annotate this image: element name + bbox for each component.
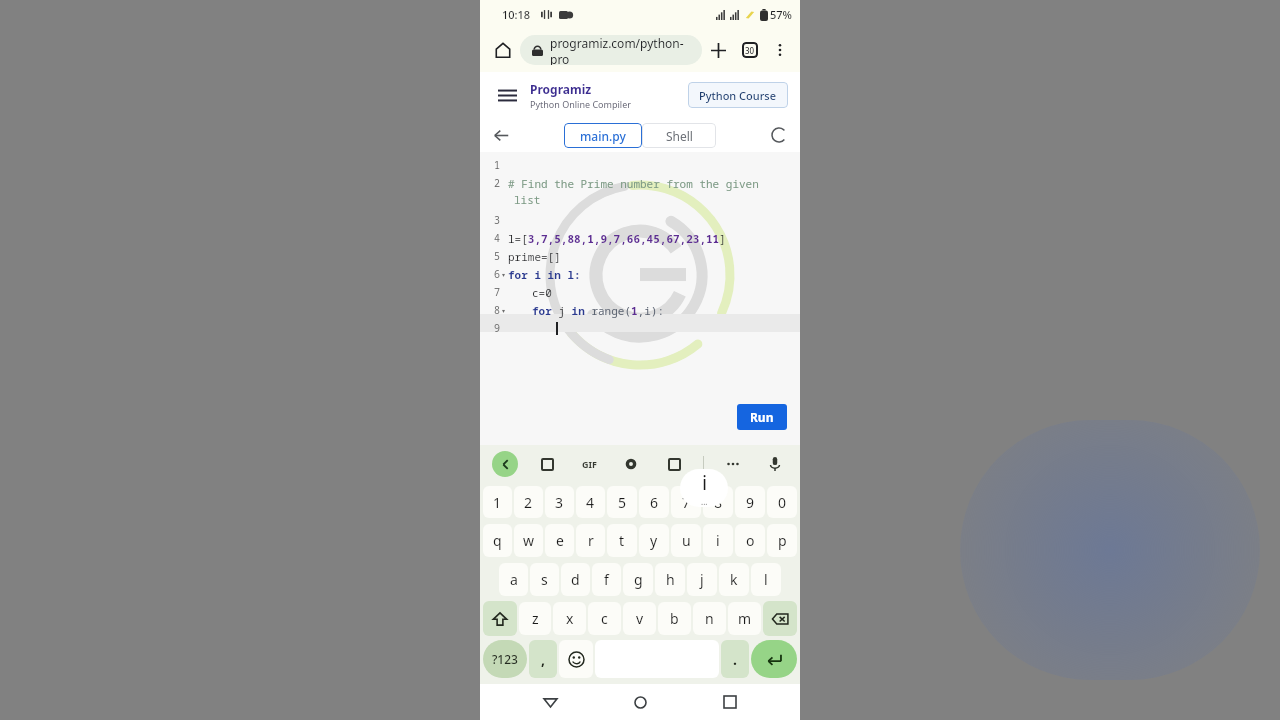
staticText: 6 bbox=[650, 493, 659, 512]
button[interactable]: Settings bbox=[618, 451, 644, 477]
staticText: prime=[] bbox=[508, 249, 561, 264]
staticText: Shell bbox=[666, 128, 693, 144]
button[interactable]: d bbox=[561, 563, 590, 596]
staticText: i bbox=[716, 531, 720, 550]
button[interactable]: Enter bbox=[751, 640, 797, 678]
staticText: c bbox=[601, 609, 608, 628]
button[interactable]: Menu bbox=[492, 80, 522, 110]
button[interactable]: m bbox=[728, 602, 761, 635]
staticText: 5 bbox=[618, 493, 627, 512]
button[interactable]: a bbox=[499, 563, 528, 596]
button[interactable]: Close toolbar bbox=[492, 451, 518, 477]
staticText: j bbox=[700, 570, 704, 589]
button[interactable]: c bbox=[588, 602, 621, 635]
staticText: 9 bbox=[494, 321, 500, 335]
staticText: Programiz bbox=[530, 81, 592, 97]
staticText: 0 bbox=[778, 493, 787, 512]
button[interactable]: More options bbox=[766, 36, 794, 64]
staticText: e bbox=[556, 531, 564, 550]
button[interactable]: e bbox=[545, 524, 574, 557]
button[interactable]: Recents bbox=[710, 684, 750, 720]
button[interactable]: Voice input bbox=[762, 451, 788, 477]
button[interactable]: 9 bbox=[735, 486, 765, 518]
button[interactable]: v bbox=[623, 602, 656, 635]
button[interactable]: f bbox=[592, 563, 621, 596]
button[interactable]: ?123 bbox=[483, 640, 527, 678]
button[interactable]: q bbox=[483, 524, 512, 557]
button[interactable]: , bbox=[529, 640, 557, 678]
staticText: y bbox=[650, 531, 658, 550]
button[interactable]: Home bbox=[620, 684, 660, 720]
button[interactable]: Python Course bbox=[688, 82, 788, 108]
button[interactable]: New tab bbox=[702, 34, 734, 66]
staticText: i bbox=[702, 469, 708, 496]
button[interactable]: r bbox=[576, 524, 605, 557]
button[interactable]: Dark mode bbox=[766, 122, 792, 148]
button[interactable]: Back bbox=[530, 684, 570, 720]
staticText: w bbox=[523, 531, 535, 550]
button[interactable]: 8 bbox=[703, 486, 733, 518]
button[interactable]: o bbox=[735, 524, 765, 557]
staticText: g bbox=[634, 570, 643, 589]
button[interactable]: main.py bbox=[564, 123, 642, 148]
button[interactable]: 1 bbox=[483, 486, 512, 518]
button[interactable]: w bbox=[514, 524, 543, 557]
staticText: Python Online Compiler bbox=[530, 98, 631, 110]
button[interactable]: 0 bbox=[767, 486, 797, 518]
button[interactable]: Emoji bbox=[559, 640, 593, 678]
button[interactable]: s bbox=[530, 563, 559, 596]
button[interactable]: g bbox=[623, 563, 653, 596]
staticText: 1 bbox=[494, 158, 500, 172]
button[interactable]: Shell bbox=[642, 123, 716, 148]
staticText: b bbox=[670, 609, 679, 628]
button[interactable]: h bbox=[655, 563, 685, 596]
staticText: o bbox=[746, 531, 755, 550]
button[interactable]: 7 bbox=[671, 486, 701, 518]
button[interactable]: z bbox=[519, 602, 551, 635]
button[interactable]: Tabs bbox=[734, 34, 766, 66]
staticText: 3 bbox=[494, 213, 500, 227]
staticText: z bbox=[532, 609, 539, 628]
staticText: d bbox=[571, 570, 580, 589]
staticText: x bbox=[566, 609, 574, 628]
staticText: f bbox=[604, 570, 609, 589]
button[interactable]: b bbox=[658, 602, 691, 635]
staticText: u bbox=[682, 531, 691, 550]
button[interactable]: y bbox=[639, 524, 669, 557]
button[interactable]: Stickers bbox=[534, 451, 560, 477]
staticText: 2 bbox=[524, 493, 533, 512]
button[interactable]: x bbox=[553, 602, 586, 635]
button[interactable]: Home bbox=[486, 33, 520, 67]
button[interactable]: 3 bbox=[545, 486, 574, 518]
staticText: Python Course bbox=[699, 88, 777, 103]
button[interactable]: k bbox=[719, 563, 749, 596]
staticText: main.py bbox=[580, 128, 626, 144]
button[interactable]: Backspace bbox=[763, 601, 797, 636]
button[interactable]: j bbox=[687, 563, 717, 596]
button[interactable]: Shift bbox=[483, 601, 517, 636]
button[interactable]: More bbox=[720, 451, 746, 477]
staticText: m bbox=[738, 609, 752, 628]
button[interactable]: 6 bbox=[639, 486, 669, 518]
button[interactable]: u bbox=[671, 524, 701, 557]
button[interactable]: programiz.com/python-pro bbox=[520, 35, 702, 65]
button[interactable]: . bbox=[721, 640, 749, 678]
button[interactable]: 5 bbox=[607, 486, 637, 518]
button[interactable]: Run bbox=[737, 404, 787, 430]
staticText: , bbox=[541, 650, 545, 669]
button[interactable]: Translate bbox=[661, 451, 687, 477]
button[interactable]: t bbox=[607, 524, 637, 557]
staticText: ?123 bbox=[492, 651, 518, 667]
staticText: s bbox=[541, 570, 548, 589]
button[interactable]: Back bbox=[488, 122, 514, 148]
button[interactable]: l bbox=[751, 563, 781, 596]
button[interactable]: p bbox=[767, 524, 797, 557]
button[interactable]: 4 bbox=[576, 486, 605, 518]
staticText: c=0 bbox=[532, 285, 552, 300]
button[interactable]: GIF bbox=[576, 451, 602, 477]
button[interactable]: i bbox=[703, 524, 733, 557]
staticText: 7 bbox=[494, 285, 500, 299]
button[interactable]: n bbox=[693, 602, 726, 635]
button[interactable]: 2 bbox=[514, 486, 543, 518]
